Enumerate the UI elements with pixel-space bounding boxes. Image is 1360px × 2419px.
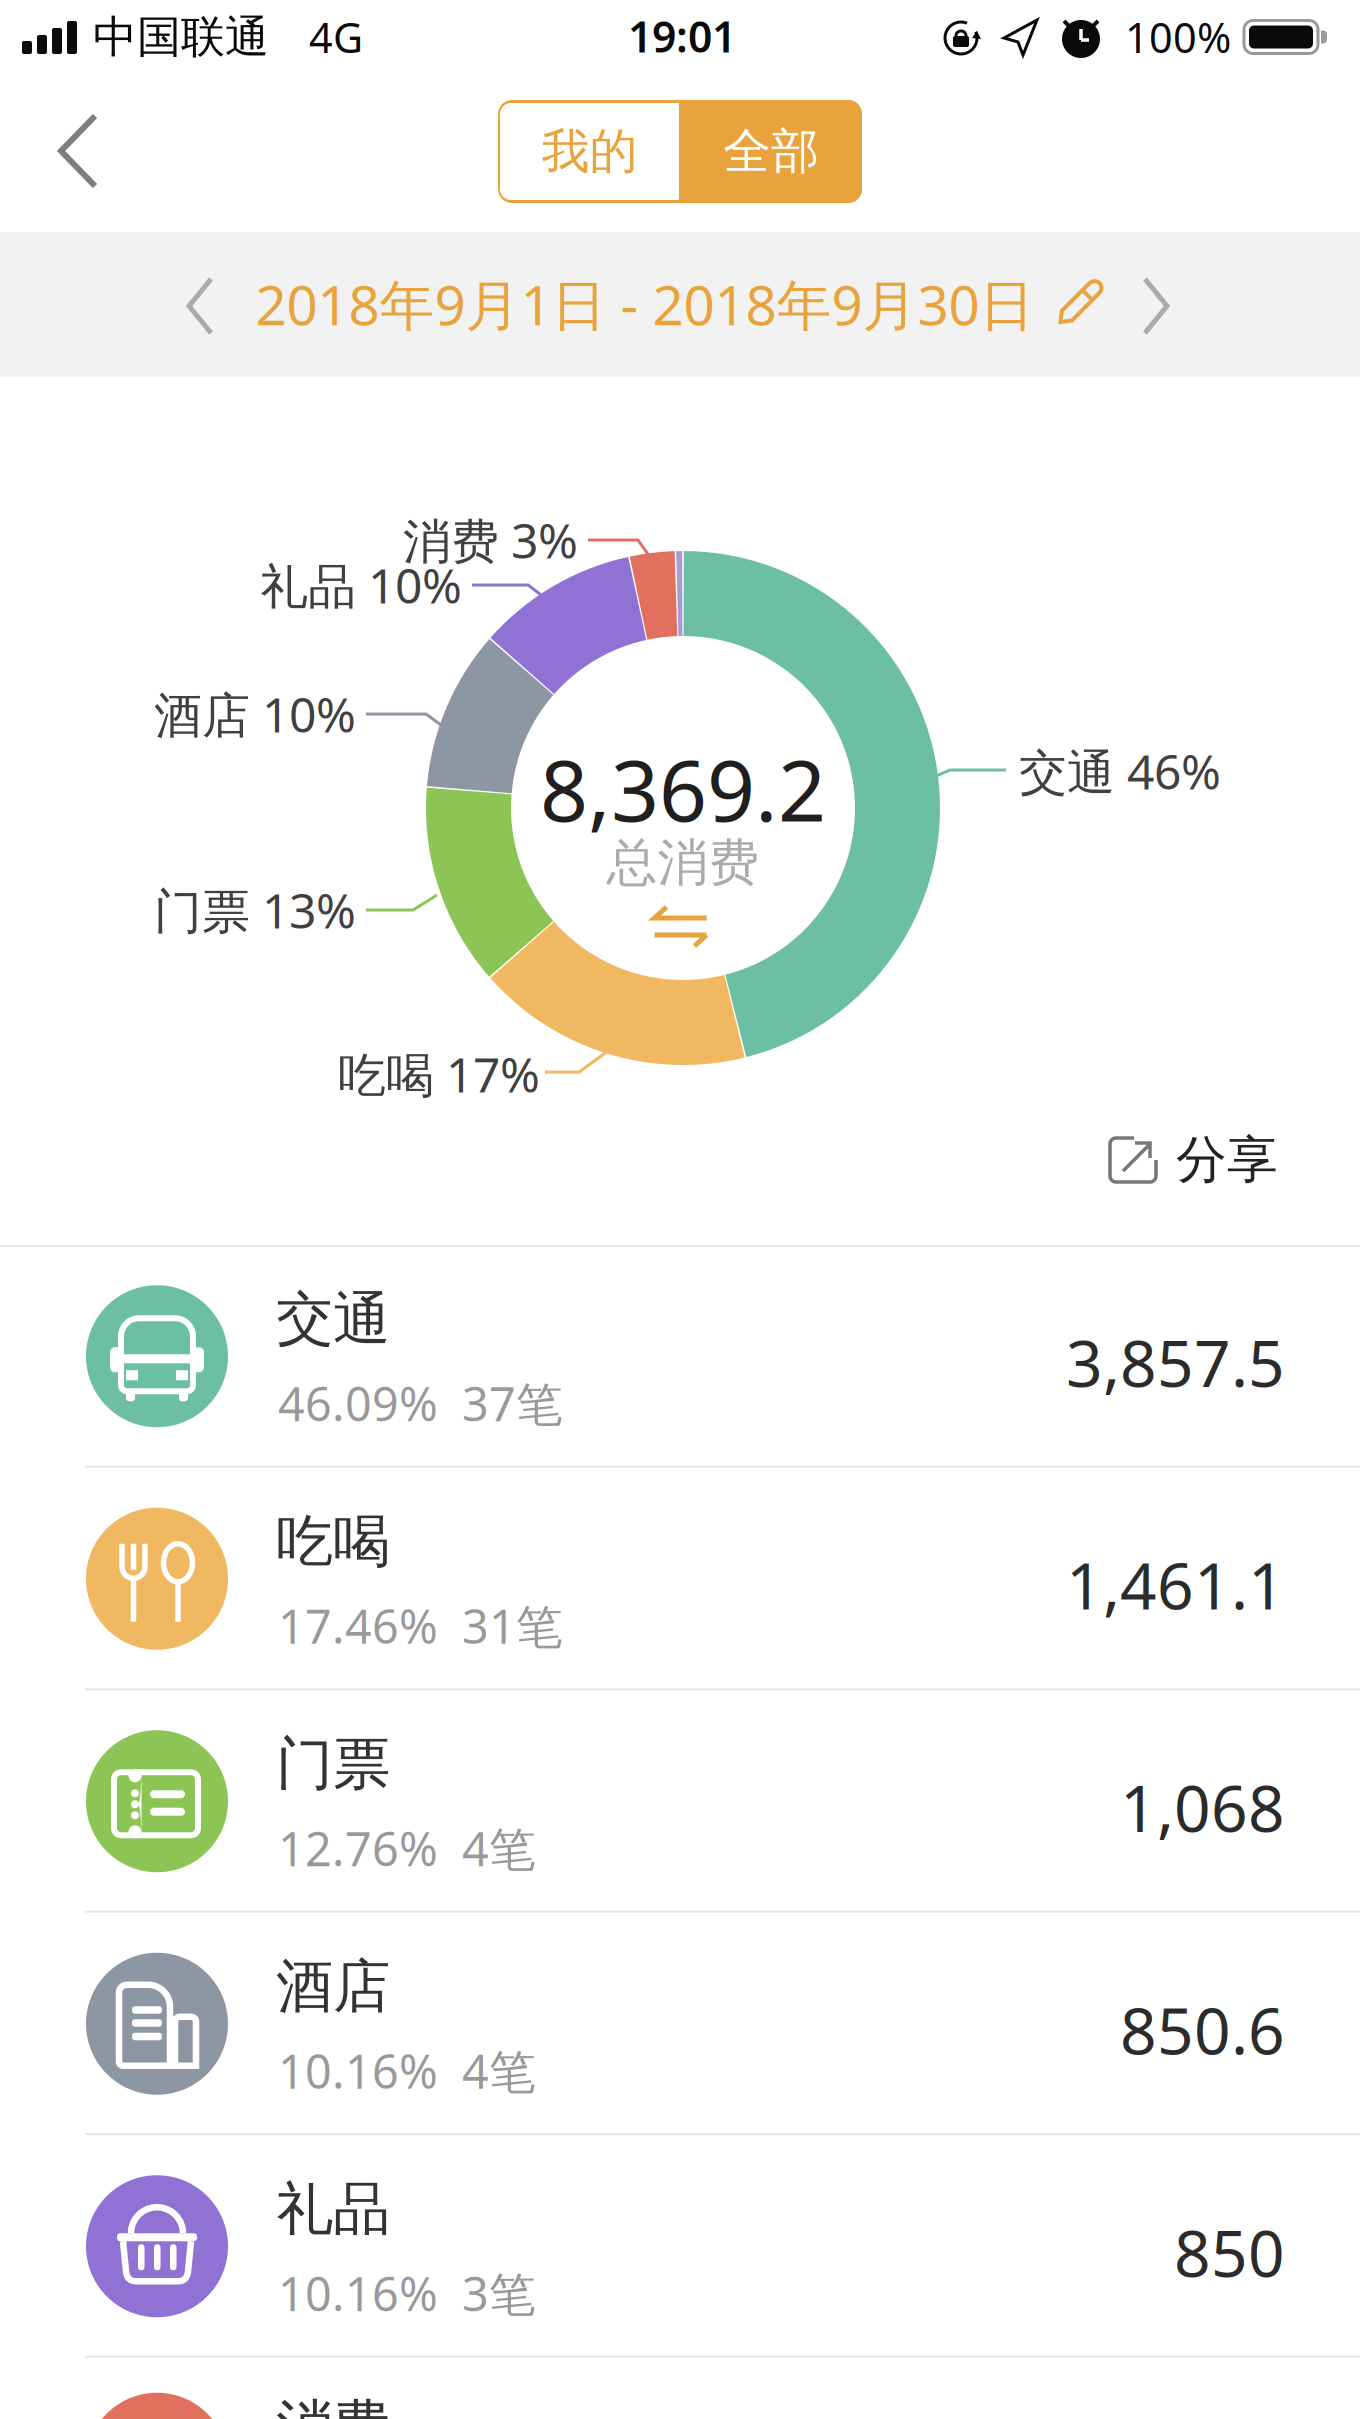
staticText: 46.09% 37笔 xyxy=(278,1372,563,1434)
staticText: 4G xyxy=(309,10,363,64)
staticText: 吃喝 17% xyxy=(338,1042,540,1106)
staticText: 8,369.2 xyxy=(540,733,826,845)
staticText: 10.16% 3笔 xyxy=(278,2262,536,2324)
staticText: 1,461.1 xyxy=(1066,1542,1285,1627)
button[interactable]: 分享 xyxy=(1106,1129,1278,1191)
button[interactable]: 2018年9月1日 - 2018年9月30日 xyxy=(255,268,1106,340)
staticText: 100% xyxy=(1125,10,1231,64)
staticText: 门票 xyxy=(276,1729,390,1799)
staticText: 17.46% 31笔 xyxy=(278,1595,563,1657)
button[interactable]: 酒店 xyxy=(0,1913,1360,2135)
staticText: 19:01 xyxy=(628,8,736,64)
button[interactable]: 消费 xyxy=(0,2353,1360,2419)
button[interactable]: 我的 xyxy=(498,100,680,203)
staticText: 交通 46% xyxy=(1019,739,1221,803)
staticText: 分享 xyxy=(1176,1129,1278,1191)
button[interactable]: Switch xyxy=(644,899,716,959)
staticText: 我的 xyxy=(541,122,637,181)
button[interactable]: 全部 xyxy=(680,100,862,203)
staticText: 吃喝 xyxy=(276,1506,390,1577)
staticText: 1,068 xyxy=(1120,1765,1285,1850)
staticText: 3,857.5 xyxy=(1066,1320,1285,1405)
staticText: 总消费 xyxy=(606,832,759,894)
button[interactable]: 门票 xyxy=(0,1690,1360,1913)
staticText: 礼品 10% xyxy=(260,553,462,617)
staticText: 消费 xyxy=(276,2391,390,2419)
staticText: 12.76% 4笔 xyxy=(278,1817,536,1879)
button[interactable]: 交通 xyxy=(0,1245,1360,1468)
staticText: 850 xyxy=(1174,2210,1285,2295)
button[interactable]: Previous period xyxy=(174,264,226,348)
staticText: 交通 xyxy=(276,1284,390,1354)
button[interactable]: 礼品 xyxy=(0,2135,1360,2358)
staticText: 850.6 xyxy=(1120,1987,1285,2072)
staticText: 全部 xyxy=(723,122,819,181)
staticText: 酒店 xyxy=(276,1951,390,2022)
staticText: 2018年9月1日 - 2018年9月30日 xyxy=(255,268,1034,340)
button[interactable]: 吃喝 xyxy=(0,1468,1360,1690)
staticText: 消费 3% xyxy=(403,508,578,572)
staticText: 中国联通 xyxy=(93,10,269,64)
button[interactable]: Next period xyxy=(1130,264,1182,348)
staticText: 礼品 xyxy=(276,2174,390,2244)
staticText: 门票 13% xyxy=(154,878,356,942)
staticText: 10.16% 4笔 xyxy=(278,2040,536,2102)
staticText: 酒店 10% xyxy=(154,682,356,746)
button[interactable]: Back xyxy=(44,99,112,203)
